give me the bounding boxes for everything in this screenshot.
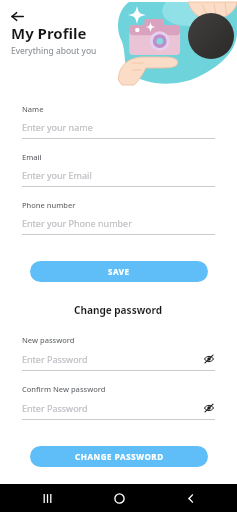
staticText: Everything about you [11, 45, 97, 57]
staticText: Phone number [22, 200, 76, 210]
button[interactable]: Name [22, 104, 215, 139]
button[interactable]: Phone number [22, 200, 215, 235]
staticText: Email [22, 152, 42, 162]
staticText: Enter your Phone number [22, 217, 132, 229]
button[interactable]: Home [106, 485, 132, 511]
button[interactable]: CHANGE PASSWORD [30, 446, 208, 467]
button[interactable]: SAVE [30, 261, 208, 282]
staticText: Enter your name [22, 121, 93, 133]
button[interactable]: Back [177, 485, 203, 511]
button[interactable]: Profile photo [188, 13, 234, 59]
button[interactable]: Show password [202, 401, 215, 414]
staticText: Enter Password [22, 402, 88, 414]
button[interactable]: Confirm New password [22, 384, 215, 420]
staticText: Change password [74, 303, 163, 317]
staticText: Confirm New password [22, 384, 106, 394]
button[interactable]: Recent apps [34, 485, 60, 511]
staticText: Name [22, 104, 44, 114]
button[interactable]: Email [22, 152, 215, 187]
staticText: New password [22, 335, 75, 345]
staticText: SAVE [108, 266, 130, 277]
button[interactable]: New password [22, 335, 215, 371]
staticText: CHANGE PASSWORD [75, 451, 164, 462]
staticText: Enter Password [22, 353, 88, 365]
staticText: Enter your Email [22, 169, 92, 181]
staticText: My Profile [11, 23, 87, 43]
button[interactable]: Show password [202, 352, 215, 365]
button[interactable]: Back [5, 4, 29, 28]
